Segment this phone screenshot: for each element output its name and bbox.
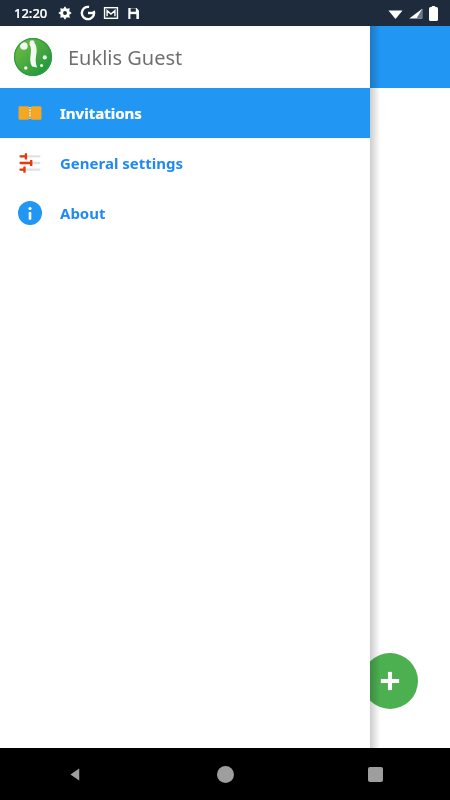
staticText: General settings — [60, 153, 184, 173]
staticText: 12:20 — [14, 4, 48, 22]
button[interactable]: Invitations — [0, 88, 370, 138]
button[interactable]: About — [0, 188, 370, 238]
staticText: Invitations — [60, 103, 142, 123]
button[interactable]: Euklis Guest — [0, 26, 370, 88]
staticText: Euklis Guest — [68, 44, 183, 71]
button[interactable]: Add — [362, 653, 418, 709]
button[interactable]: Home — [150, 748, 300, 800]
button[interactable]: General settings — [0, 138, 370, 188]
staticText: About — [60, 203, 106, 223]
button[interactable]: Recents — [300, 748, 450, 800]
button[interactable]: Back — [0, 748, 150, 800]
